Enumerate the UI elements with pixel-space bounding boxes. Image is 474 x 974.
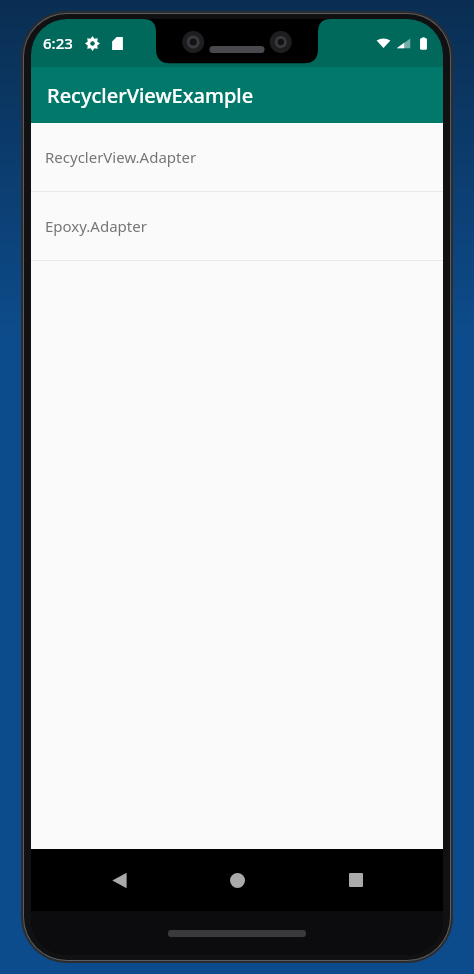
button[interactable]: RecyclerViewExample xyxy=(31,67,443,123)
staticText: RecyclerView.Adapter xyxy=(45,147,197,167)
button[interactable]: Epoxy.Adapter xyxy=(31,192,443,260)
staticText: 6:23 xyxy=(43,33,73,53)
button[interactable]: Recent apps xyxy=(325,849,387,911)
staticText: RecyclerViewExample xyxy=(47,82,254,109)
button[interactable]: RecyclerView.Adapter xyxy=(31,123,443,191)
staticText: Epoxy.Adapter xyxy=(45,216,147,236)
button[interactable]: Back xyxy=(88,849,150,911)
button[interactable]: Home xyxy=(206,849,268,911)
